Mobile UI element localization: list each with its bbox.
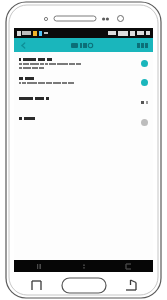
button[interactable]: Recent apps (28, 277, 44, 293)
button[interactable]: Back (123, 277, 139, 293)
button[interactable]: Enabled (141, 79, 148, 86)
button[interactable]: Enabled (141, 60, 148, 67)
button[interactable]: Back (17, 39, 29, 51)
button[interactable]: Recent apps (34, 261, 44, 271)
button[interactable]: Home (62, 278, 106, 293)
button[interactable]: Disabled (19, 116, 148, 128)
button[interactable]: Enabled (19, 57, 148, 70)
button[interactable]: Back (123, 261, 133, 271)
button[interactable]: Disabled (141, 119, 148, 126)
button[interactable]: Enabled (19, 76, 148, 88)
button[interactable]: Home (79, 261, 89, 271)
button[interactable] (19, 96, 148, 108)
button[interactable] (135, 43, 150, 48)
